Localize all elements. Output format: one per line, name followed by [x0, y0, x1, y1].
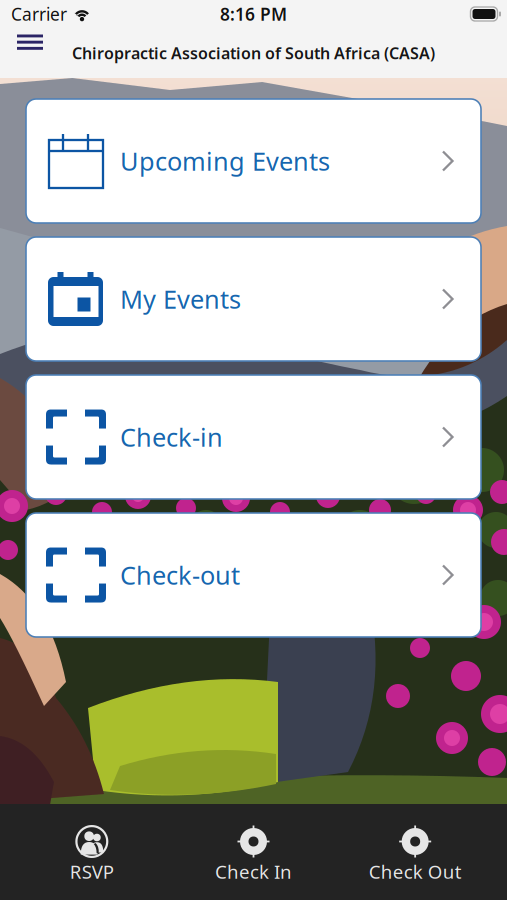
- button[interactable]: Check Out: [334, 804, 496, 900]
- button[interactable]: Upcoming Events: [26, 99, 481, 223]
- button[interactable]: Check-in: [26, 375, 481, 499]
- button[interactable]: RSVP: [11, 804, 173, 900]
- staticText: Check-in: [120, 420, 223, 454]
- button[interactable]: My Events: [26, 237, 481, 361]
- staticText: Check-out: [120, 558, 240, 592]
- staticText: RSVP: [70, 859, 114, 884]
- button[interactable]: Check-out: [26, 513, 481, 637]
- staticText: Upcoming Events: [120, 144, 330, 178]
- staticText: Check Out: [369, 859, 462, 884]
- staticText: Carrier: [11, 2, 67, 25]
- staticText: 8:16 PM: [220, 2, 287, 25]
- staticText: Check In: [215, 859, 292, 884]
- staticText: My Events: [120, 282, 241, 316]
- staticText: Chiropractic Association of South Africa…: [72, 42, 435, 64]
- button[interactable]: Menu: [0, 28, 57, 77]
- button[interactable]: Check In: [173, 804, 334, 900]
